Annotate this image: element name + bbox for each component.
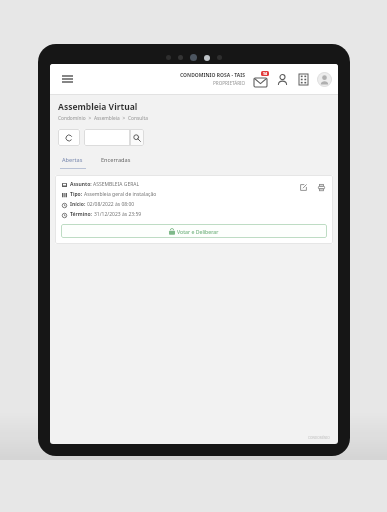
staticText: > xyxy=(86,115,94,122)
staticText: Assembleia geral de instalação xyxy=(84,191,157,198)
staticText: Abertas xyxy=(62,156,83,164)
staticText: > xyxy=(120,115,128,122)
staticText: Assembleia Virtual xyxy=(58,101,138,113)
staticText: 31/12/2023 às 23:59 xyxy=(94,211,142,218)
button[interactable]: Perfil xyxy=(275,72,289,86)
staticText: CONDOMINIO ROSA - TAIS xyxy=(180,72,246,79)
button[interactable]: Abrir xyxy=(297,181,309,193)
button[interactable]: Votar e Deliberar xyxy=(61,224,327,238)
staticText: 14 xyxy=(263,71,267,76)
staticText: Início: xyxy=(70,201,87,208)
staticText: Votar e Deliberar xyxy=(177,228,219,235)
button[interactable]: Conta xyxy=(317,72,332,87)
staticText: Assembleia xyxy=(94,115,120,122)
staticText: 02/08/2022 às 08:00 xyxy=(87,201,135,208)
staticText: Tipo: xyxy=(70,191,84,198)
button[interactable]: Menu xyxy=(58,70,76,88)
button[interactable]: Imprimir xyxy=(315,181,327,193)
staticText: PROPRIETÁRIO xyxy=(213,80,246,86)
staticText: Condomínio xyxy=(58,115,86,122)
button[interactable]: Encerradas xyxy=(97,154,135,166)
button[interactable]: Atualizar xyxy=(58,129,80,146)
staticText: Término: xyxy=(70,211,94,218)
staticText: ASSEMBLEIA GERAL xyxy=(93,181,140,188)
button[interactable]: Condomínio xyxy=(296,72,310,86)
button[interactable]: Pesquisar xyxy=(130,129,144,146)
staticText: CONDOMÍNIO xyxy=(308,436,330,440)
staticText: Consulta xyxy=(128,115,148,122)
button[interactable]: Abertas xyxy=(58,154,87,169)
staticText: Encerradas xyxy=(101,156,131,164)
staticText: Assunto: xyxy=(70,181,93,188)
button[interactable]: Mensagens xyxy=(252,71,268,87)
button[interactable] xyxy=(84,129,130,146)
